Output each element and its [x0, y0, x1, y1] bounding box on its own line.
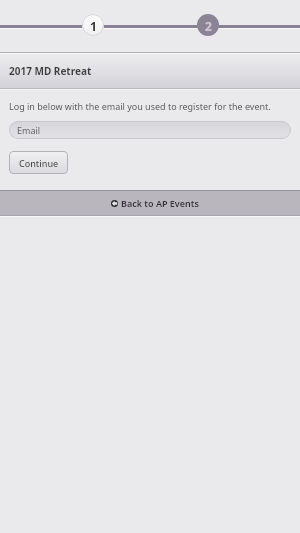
button[interactable]: Back to AP Events: [0, 190, 300, 216]
staticText: Log in below with the email you used to …: [9, 100, 271, 112]
button[interactable]: Email: [9, 121, 291, 139]
button[interactable]: Step 1: [82, 14, 104, 36]
button[interactable]: Continue: [9, 151, 68, 174]
staticText: Back to AP Events: [121, 197, 199, 209]
button[interactable]: Step 2: [197, 14, 219, 36]
staticText: 1: [90, 18, 97, 34]
staticText: Email: [17, 124, 41, 136]
staticText: 2: [205, 18, 212, 34]
staticText: 2017 MD Retreat: [9, 64, 92, 78]
staticText: Continue: [19, 157, 59, 169]
